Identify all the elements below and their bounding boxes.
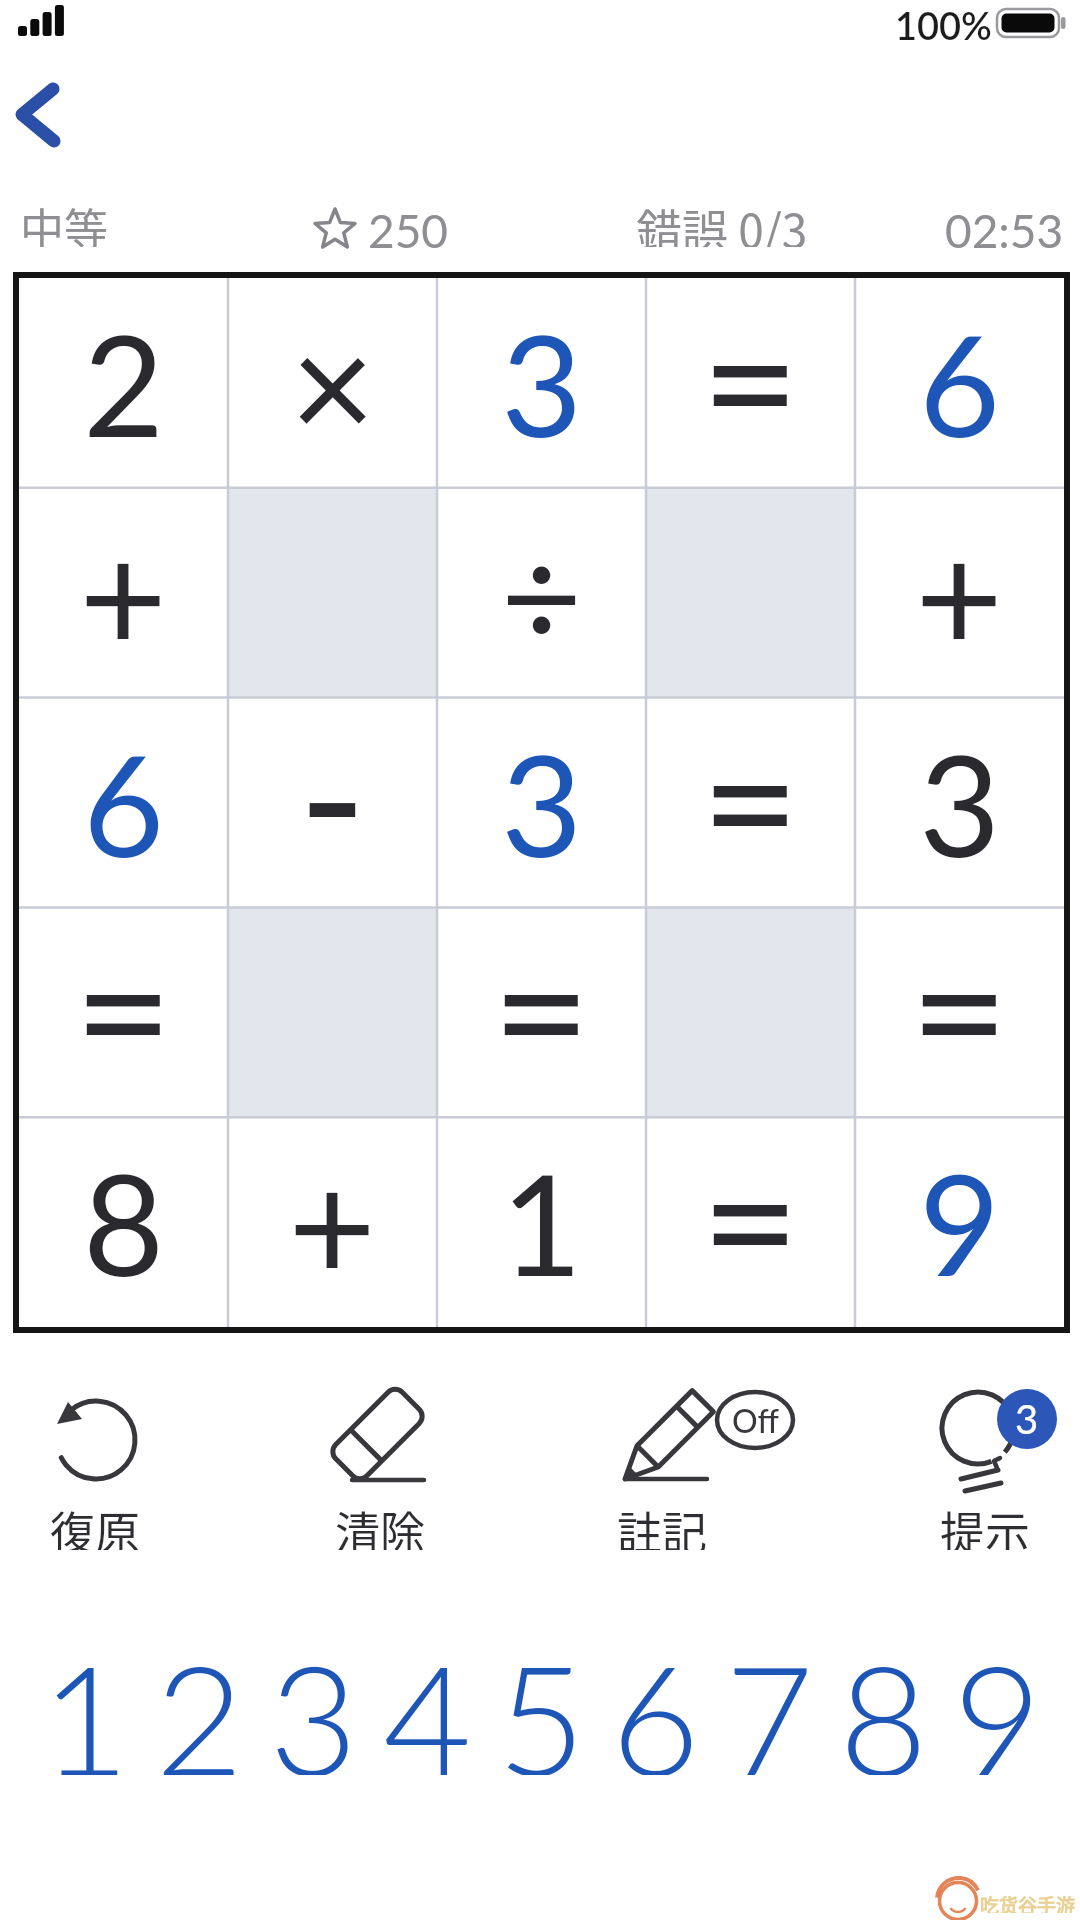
button[interactable] (292, 1383, 468, 1558)
staticText: 錯誤 0/3 (636, 195, 808, 247)
button[interactable]: + (855, 488, 1064, 698)
staticText: 4 (383, 1625, 472, 1775)
staticText: = (701, 1115, 800, 1319)
staticText: 6 (919, 299, 1001, 467)
button[interactable] (602, 1383, 778, 1558)
button[interactable]: = (855, 902, 1064, 1112)
button[interactable]: 3 (256, 1625, 370, 1775)
staticText: 7 (725, 1625, 814, 1775)
button[interactable]: + (228, 1117, 437, 1327)
staticText: + (915, 502, 1004, 684)
button[interactable] (897, 1383, 1073, 1558)
button[interactable]: = (646, 693, 855, 903)
staticText: 250 (368, 203, 449, 255)
staticText: ÷ (501, 509, 583, 677)
button[interactable]: 8 (826, 1625, 940, 1775)
button[interactable]: = (437, 902, 646, 1112)
staticText: 3 (501, 299, 583, 467)
staticText: 清除 (335, 1498, 426, 1550)
button[interactable]: 9 (855, 1117, 1064, 1327)
staticText: 3 (501, 719, 583, 887)
staticText: 9 (953, 1625, 1042, 1775)
button[interactable]: = (19, 902, 228, 1112)
staticText: 1 (501, 1138, 583, 1306)
staticText: 3 (269, 1625, 358, 1775)
staticText: 6 (83, 719, 165, 887)
button[interactable]: 8 (19, 1117, 228, 1327)
staticText: 3 (1015, 1395, 1039, 1443)
button[interactable]: 1 (437, 1117, 646, 1327)
button[interactable]: 4 (370, 1625, 484, 1775)
button[interactable]: 6 (19, 698, 228, 908)
button[interactable]: - (228, 682, 437, 892)
button[interactable]: 9 (940, 1625, 1054, 1775)
staticText: = (701, 696, 800, 900)
staticText: 6 (611, 1625, 700, 1775)
button[interactable]: 7 (712, 1625, 826, 1775)
button[interactable]: ÷ (437, 488, 646, 698)
staticText: 2 (83, 299, 165, 467)
button[interactable] (6, 75, 76, 155)
staticText: 提示 (940, 1498, 1031, 1550)
staticText: Off (732, 1401, 779, 1439)
staticText: 吃货谷手游 (980, 1891, 1076, 1913)
staticText: × (290, 295, 376, 471)
staticText: = (492, 905, 591, 1109)
button[interactable]: 3 (855, 698, 1064, 908)
staticText: - (298, 682, 367, 892)
button[interactable]: + (19, 488, 228, 698)
button[interactable]: = (646, 1112, 855, 1322)
button[interactable]: 3 (437, 278, 646, 488)
staticText: 1 (41, 1625, 130, 1775)
button[interactable]: = (646, 273, 855, 483)
staticText: = (74, 905, 173, 1109)
button[interactable]: × (228, 278, 437, 488)
staticText: 8 (83, 1138, 165, 1306)
staticText: 3 (919, 719, 1001, 887)
staticText: = (910, 905, 1009, 1109)
staticText: 02:53 (945, 203, 1064, 255)
staticText: + (288, 1131, 377, 1313)
button[interactable]: 2 (142, 1625, 256, 1775)
staticText: 9 (919, 1138, 1001, 1306)
button[interactable]: 5 (484, 1625, 598, 1775)
button[interactable]: 2 (19, 278, 228, 488)
staticText: = (701, 276, 800, 480)
staticText: 註記 (617, 1498, 708, 1550)
staticText: 2 (155, 1625, 244, 1775)
button[interactable]: 6 (855, 278, 1064, 488)
staticText: 100% (895, 2, 992, 46)
button[interactable]: 3 (437, 698, 646, 908)
staticText: 中等 (20, 195, 108, 247)
button[interactable]: 1 (28, 1625, 142, 1775)
button[interactable] (7, 1383, 183, 1558)
staticText: + (79, 502, 168, 684)
button[interactable]: 6 (598, 1625, 712, 1775)
staticText: 復原 (50, 1498, 141, 1550)
staticText: 8 (839, 1625, 928, 1775)
staticText: 5 (497, 1625, 586, 1775)
